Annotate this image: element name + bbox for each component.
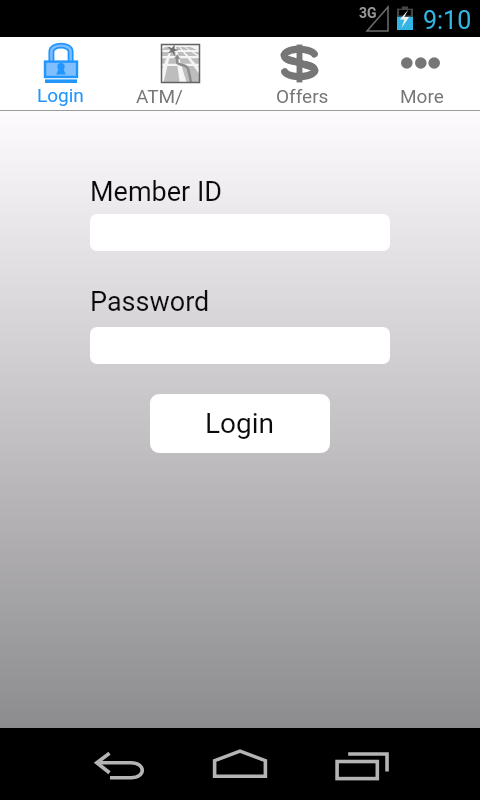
staticText: Password: [90, 286, 210, 318]
button[interactable]: Home: [180, 728, 300, 800]
button[interactable]: [360, 37, 480, 110]
staticText: Offers: [276, 85, 329, 107]
button[interactable]: [120, 37, 240, 110]
staticText: 9:10: [423, 6, 472, 35]
button[interactable]: Back: [60, 728, 180, 800]
button[interactable]: Login: [150, 394, 330, 453]
staticText: ATM/: [136, 85, 183, 107]
staticText: Login: [37, 84, 84, 106]
button[interactable]: [240, 37, 360, 110]
button[interactable]: Recent apps: [300, 728, 420, 800]
button[interactable]: [0, 37, 120, 110]
staticText: More: [400, 85, 444, 107]
staticText: 3G: [359, 5, 377, 21]
staticText: Member ID: [90, 176, 222, 208]
staticText: Login: [205, 407, 275, 440]
